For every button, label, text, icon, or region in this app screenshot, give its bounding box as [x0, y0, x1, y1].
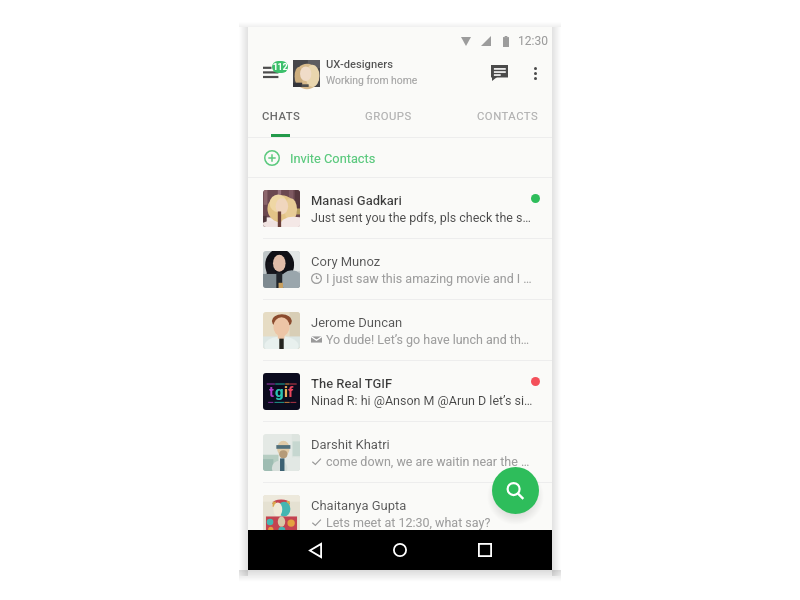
staticText: GROUPS: [365, 110, 412, 123]
button[interactable]: Search: [492, 467, 539, 514]
staticText: Lets meet at 12:30, what say?: [326, 515, 491, 530]
staticText: Cory Munoz: [311, 254, 381, 269]
button[interactable]: Manasi Gadkari: [248, 178, 552, 239]
button[interactable]: Jerome Duncan: [248, 300, 552, 361]
staticText: I just saw this amazing movie and I …: [326, 271, 532, 286]
staticText: t: [269, 383, 275, 401]
button[interactable]: Invite Contacts: [248, 138, 552, 178]
button[interactable]: Menu: [263, 61, 289, 89]
button[interactable]: New message: [486, 60, 512, 86]
staticText: Invite Contacts: [290, 151, 376, 166]
button[interactable]: CONTACTS: [476, 97, 540, 135]
staticText: Yo dude! Let’s go have lunch and th…: [326, 332, 530, 347]
staticText: Working from home: [326, 74, 418, 86]
button[interactable]: GROUPS: [360, 97, 416, 135]
staticText: g: [275, 383, 284, 401]
button[interactable]: Home: [380, 530, 420, 570]
button[interactable]: Darshit Khatri: [248, 422, 552, 483]
staticText: The Real TGIF: [311, 376, 393, 391]
button[interactable]: t: [248, 361, 552, 422]
button[interactable]: CHATS: [257, 97, 306, 135]
button[interactable]: Chaitanya Gupta: [248, 483, 552, 544]
staticText: Just sent you the pdfs, pls check the s…: [311, 210, 531, 225]
staticText: Chaitanya Gupta: [311, 498, 407, 513]
staticText: f: [288, 383, 294, 401]
staticText: Manasi Gadkari: [311, 193, 402, 208]
staticText: CHATS: [262, 110, 301, 123]
staticText: 12:30: [518, 34, 548, 48]
staticText: CONTACTS: [477, 110, 539, 123]
staticText: i: [284, 383, 288, 401]
button[interactable]: More options: [524, 62, 546, 84]
button[interactable]: Recents: [465, 530, 505, 570]
staticText: Ninad R: hi @Anson M @Arun D let’s si…: [311, 393, 533, 408]
staticText: UX-designers: [326, 58, 393, 71]
staticText: come down, we are waitin near the …: [326, 454, 530, 469]
staticText: 112: [273, 62, 288, 72]
staticText: Jerome Duncan: [311, 315, 403, 330]
staticText: Darshit Khatri: [311, 437, 390, 452]
button[interactable]: Back: [295, 530, 335, 570]
button[interactable]: Cory Munoz: [248, 239, 552, 300]
